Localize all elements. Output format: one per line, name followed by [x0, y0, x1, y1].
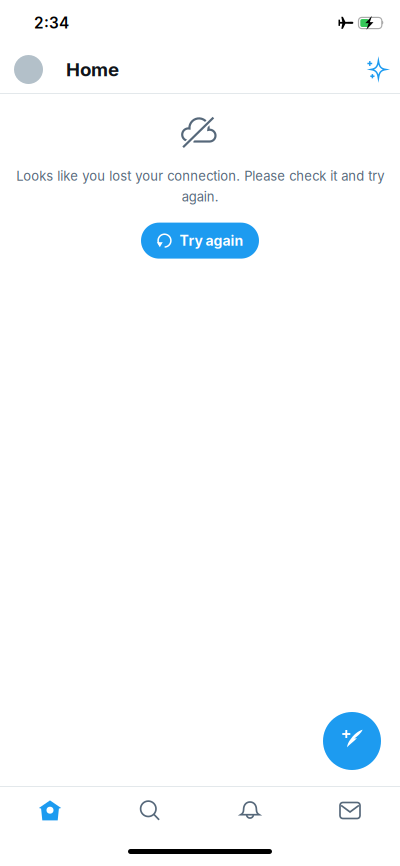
button[interactable]: Top Tweets: [366, 57, 389, 81]
staticText: Try again: [179, 232, 243, 249]
staticText: 2:34: [34, 14, 69, 32]
button[interactable]: Try again: [141, 223, 259, 259]
staticText: Looks like you lost your connection. Ple…: [16, 168, 384, 205]
staticText: Home: [66, 58, 119, 81]
button[interactable]: Messages: [300, 787, 400, 834]
button[interactable]: Profile: [14, 55, 43, 84]
button[interactable]: Compose: [323, 712, 381, 770]
button[interactable]: Search: [100, 787, 200, 834]
button[interactable]: Home: [0, 787, 100, 834]
button[interactable]: Notifications: [200, 787, 300, 834]
